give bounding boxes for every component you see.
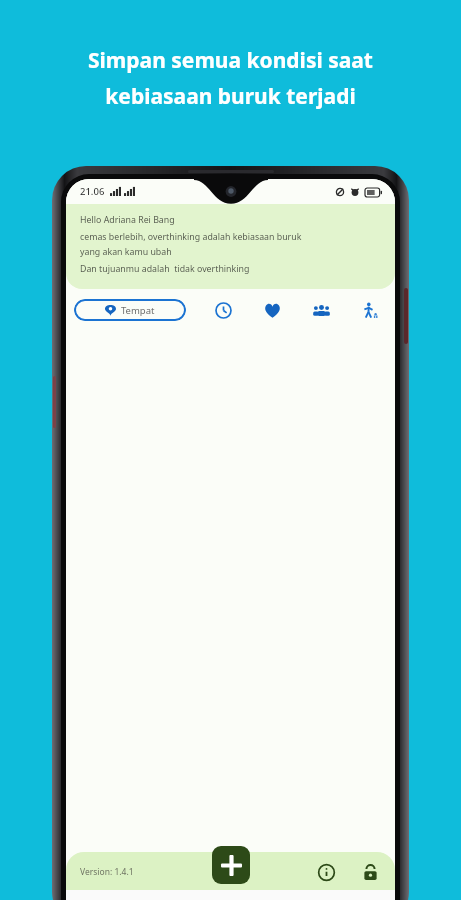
staticText: Dan tujuanmu adalah tidak overthinking xyxy=(80,263,250,275)
staticText: 21.06 xyxy=(80,185,105,198)
button[interactable]: Info xyxy=(313,859,339,885)
button[interactable]: Aktivitas xyxy=(357,297,383,323)
button[interactable]: Orang xyxy=(308,297,334,323)
staticText: Tempat xyxy=(121,304,155,317)
button[interactable]: Waktu xyxy=(210,297,236,323)
staticText: Version: 1.4.1 xyxy=(80,866,134,878)
button[interactable]: Tempat xyxy=(74,299,186,321)
staticText: Simpan semua kondisi saat xyxy=(88,46,373,75)
staticText: Hello Adriana Rei Bang xyxy=(80,214,175,226)
staticText: yang akan kamu ubah xyxy=(80,246,172,258)
button[interactable]: Lock xyxy=(357,859,383,885)
staticText: kebiasaan buruk terjadi xyxy=(105,82,356,111)
button[interactable]: Tambah xyxy=(212,846,250,884)
staticText: cemas berlebih, overthinking adalah kebi… xyxy=(80,231,302,243)
button[interactable]: Perasaan xyxy=(259,297,285,323)
